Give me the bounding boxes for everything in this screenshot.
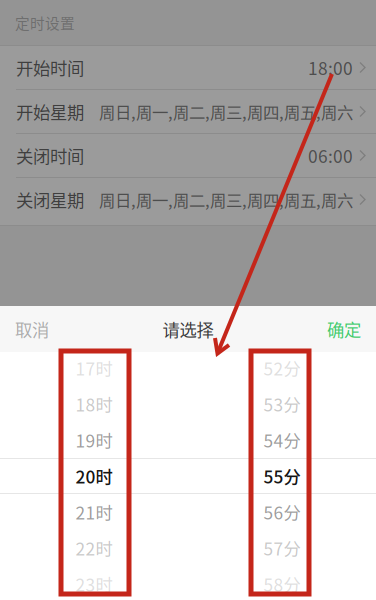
staticText: 20时 <box>75 463 112 489</box>
staticText: 56分 <box>263 499 300 525</box>
staticText: 周日,周一,周二,周三,周四,周五,周六 <box>99 188 353 211</box>
button[interactable]: 关闭星期 <box>0 178 376 221</box>
staticText: 58分 <box>263 571 300 597</box>
staticText: 关闭星期 <box>16 187 84 212</box>
staticText: 关闭时间 <box>16 143 84 168</box>
staticText: 23时 <box>75 571 112 597</box>
staticText: 取消 <box>15 316 49 342</box>
staticText: 确定 <box>327 316 361 342</box>
staticText: 53分 <box>263 391 300 417</box>
staticText: 57分 <box>263 535 300 561</box>
staticText: 55分 <box>263 463 300 489</box>
staticText: 18:00 <box>308 55 353 80</box>
button[interactable]: 开始时间 <box>0 46 376 89</box>
staticText: 54分 <box>263 427 300 453</box>
staticText: 周日,周一,周二,周三,周四,周五,周六 <box>99 100 353 123</box>
button[interactable]: 开始星期 <box>0 90 376 133</box>
staticText: 17时 <box>75 355 112 381</box>
staticText: 18时 <box>75 391 112 417</box>
staticText: 52分 <box>263 355 300 381</box>
button[interactable]: 取消 <box>0 306 64 352</box>
staticText: 22时 <box>75 535 112 561</box>
staticText: 定时设置 <box>15 12 75 33</box>
staticText: 开始时间 <box>16 55 84 80</box>
button[interactable]: 关闭时间 <box>0 134 376 177</box>
staticText: 21时 <box>75 499 112 525</box>
staticText: 请选择 <box>162 316 213 342</box>
button[interactable]: 确定 <box>312 306 376 352</box>
staticText: 19时 <box>75 427 112 453</box>
staticText: 开始星期 <box>16 99 84 124</box>
staticText: 06:00 <box>308 143 353 168</box>
